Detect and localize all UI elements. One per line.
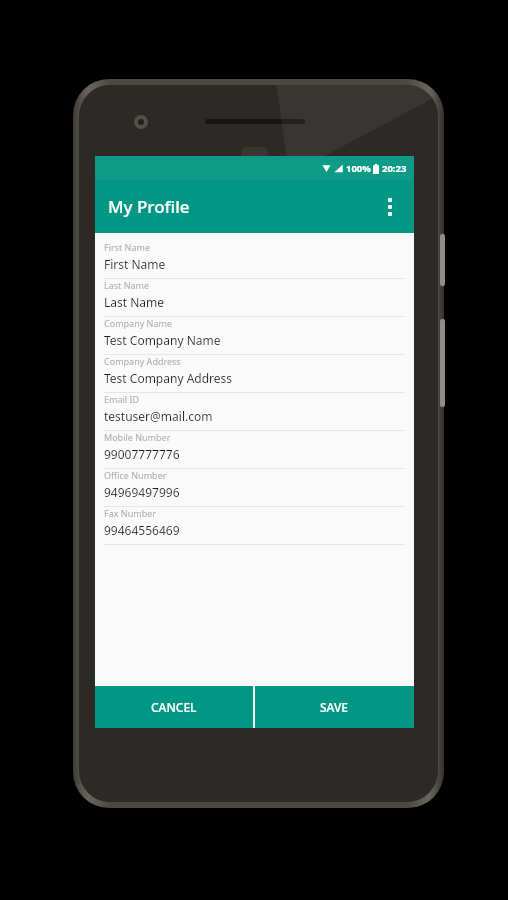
button[interactable]: Office Number: [95, 469, 414, 507]
staticText: 20:23: [382, 162, 407, 175]
button[interactable]: First Name: [95, 241, 414, 279]
staticText: testuser@mail.com: [104, 408, 213, 424]
staticText: My Profile: [108, 195, 190, 218]
staticText: SAVE: [320, 699, 349, 715]
button[interactable]: CANCEL: [95, 686, 253, 728]
staticText: Company Name: [104, 317, 173, 329]
staticText: 99464556469: [104, 522, 180, 538]
staticText: Mobile Number: [104, 431, 171, 443]
button[interactable]: Fax Number: [95, 507, 414, 545]
staticText: First Name: [104, 241, 150, 253]
staticText: Test Company Name: [104, 332, 221, 348]
staticText: Office Number: [104, 469, 167, 481]
button[interactable]: SAVE: [255, 686, 414, 728]
button[interactable]: Last Name: [95, 279, 414, 317]
staticText: Company Address: [104, 355, 181, 367]
staticText: 94969497996: [104, 484, 180, 500]
staticText: Test Company Address: [104, 370, 233, 386]
staticText: Fax Number: [104, 507, 156, 519]
button[interactable]: More options: [371, 188, 409, 226]
staticText: Last Name: [104, 294, 165, 310]
staticText: First Name: [104, 256, 166, 272]
button[interactable]: Email ID: [95, 393, 414, 431]
button[interactable]: Mobile Number: [95, 431, 414, 469]
staticText: CANCEL: [151, 699, 197, 715]
staticText: 100%: [346, 162, 371, 175]
staticText: 99007777776: [104, 446, 180, 462]
button[interactable]: Company Address: [95, 355, 414, 393]
staticText: Last Name: [104, 279, 150, 291]
staticText: Email ID: [104, 393, 140, 405]
button[interactable]: Company Name: [95, 317, 414, 355]
